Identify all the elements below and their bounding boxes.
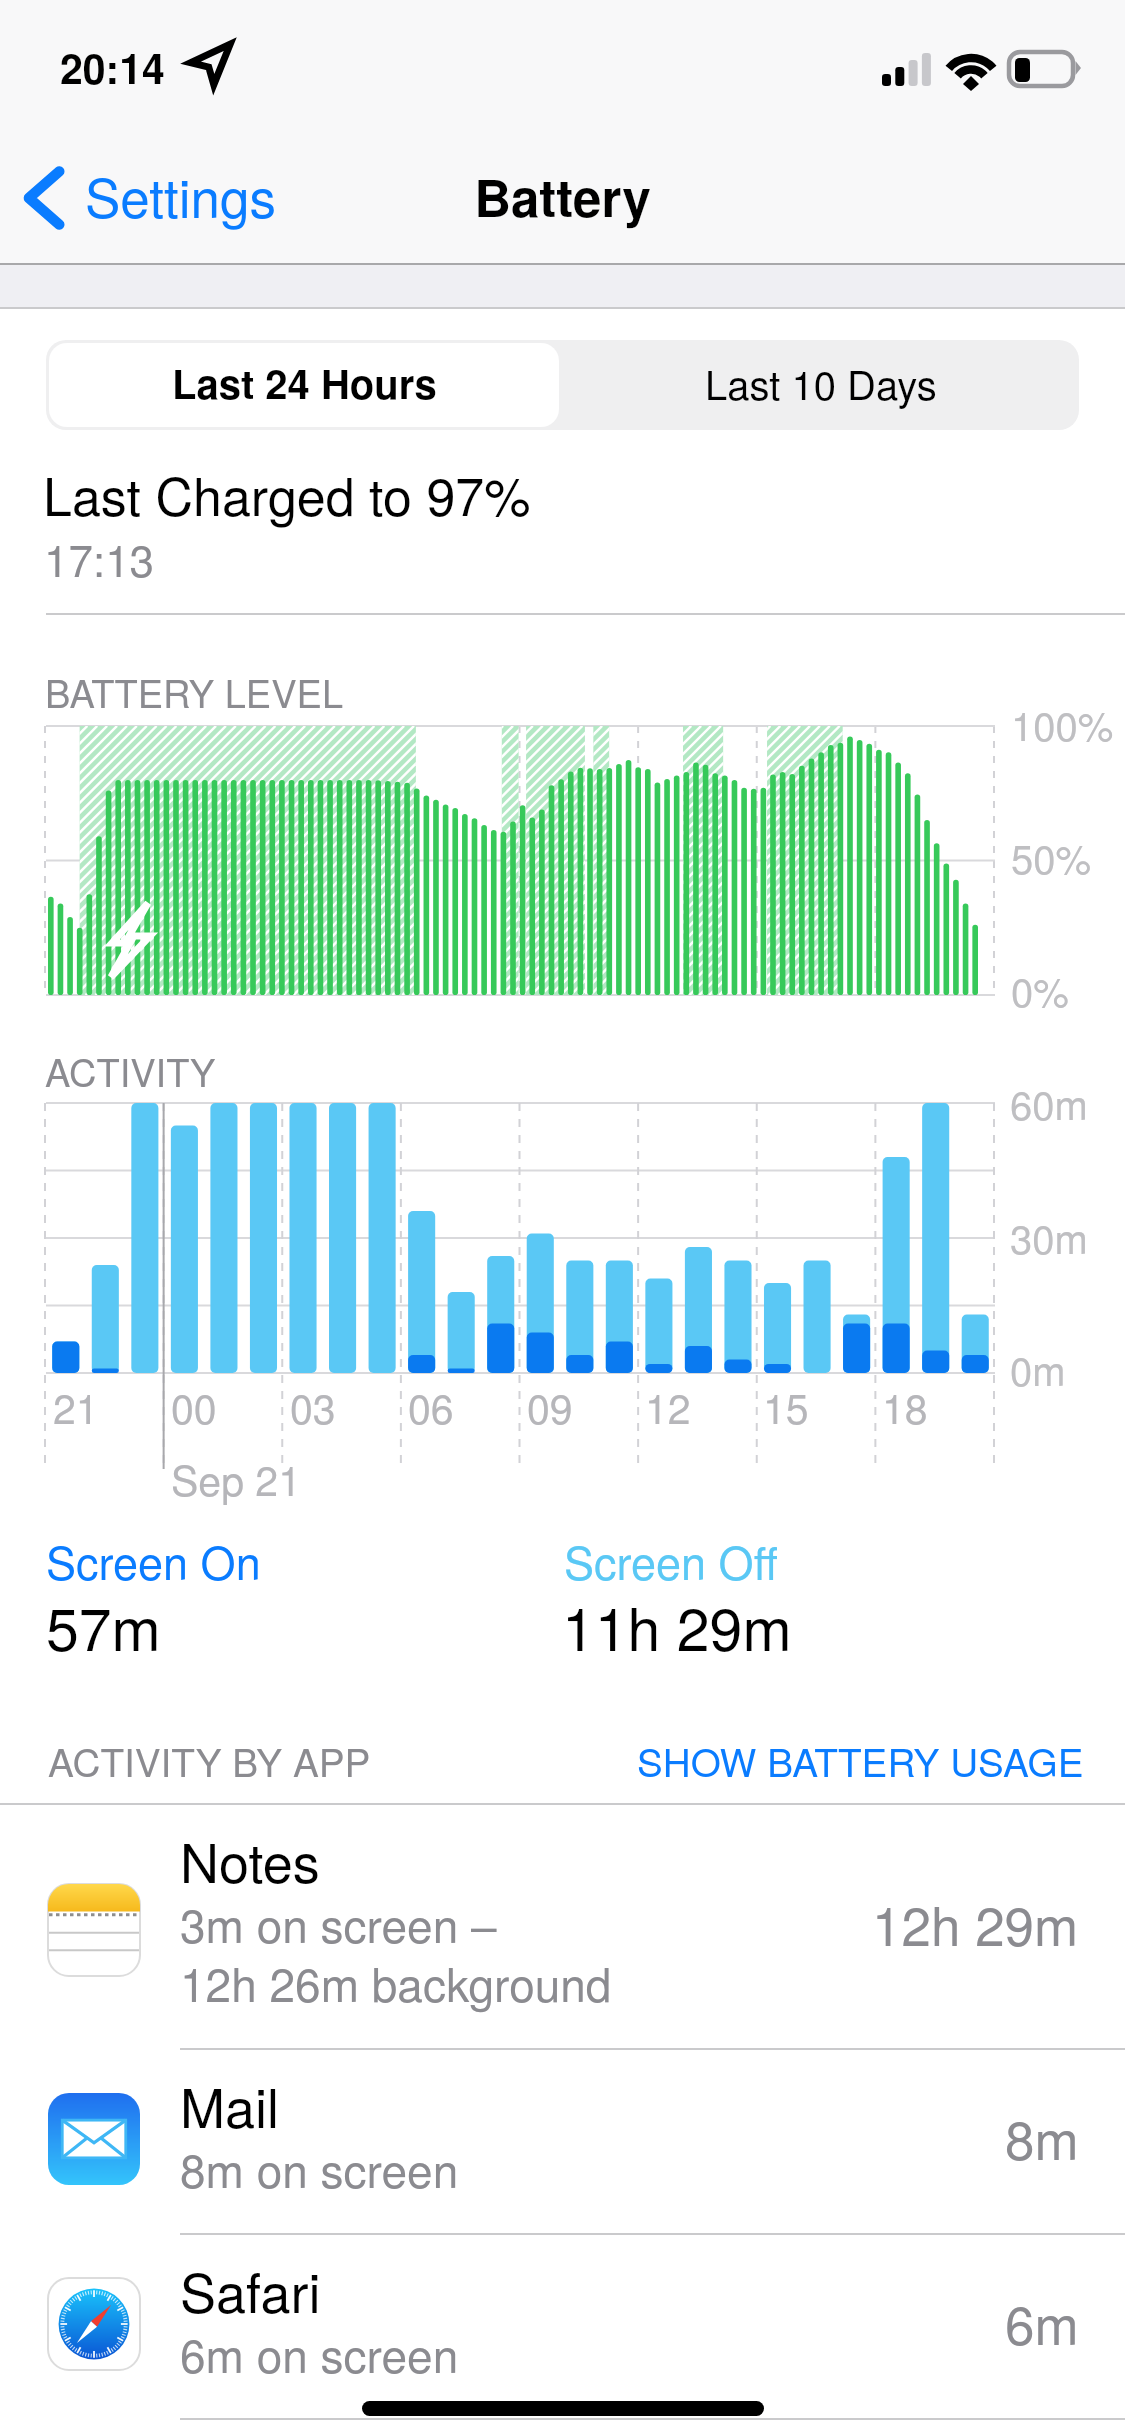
staticText: 0m (1010, 1340, 1066, 1397)
staticText: Safari (180, 2251, 321, 2328)
staticText: Sep 21 (171, 1449, 301, 1508)
staticText: 12h 29m (872, 1885, 1079, 1961)
staticText: 03 (290, 1377, 336, 1436)
button[interactable] (0, 2235, 1125, 2418)
staticText: Last Charged to 97% (43, 456, 531, 530)
staticText: 20:14 (60, 38, 165, 97)
staticText: Notes (180, 1821, 320, 1898)
staticText: Screen On (46, 1528, 261, 1592)
button[interactable]: SHOW BATTERY USAGE (637, 1733, 1084, 1788)
staticText: Last 10 Days (705, 354, 937, 411)
button[interactable]: Settings (0, 132, 300, 264)
staticText: 6m (1005, 2284, 1079, 2360)
staticText: 57m (46, 1583, 161, 1667)
staticText: 30m (1010, 1208, 1088, 1265)
staticText: 00 (171, 1377, 217, 1436)
staticText: ACTIVITY (45, 1043, 216, 1097)
staticText: 12 (645, 1377, 691, 1436)
staticText: 17:13 (44, 526, 155, 589)
button[interactable] (0, 1805, 1125, 2048)
staticText: ACTIVITY BY APP (48, 1733, 371, 1788)
staticText: SHOW BATTERY USAGE (637, 1733, 1084, 1788)
button[interactable]: Last 10 Days (562, 340, 1079, 430)
staticText: 09 (527, 1377, 573, 1436)
staticText: Last 24 Hours (172, 354, 437, 411)
staticText: 15 (763, 1377, 809, 1436)
staticText: Screen Off (564, 1528, 778, 1592)
staticText: 60m (1010, 1074, 1088, 1131)
staticText: 12h 26m background (180, 1949, 612, 2015)
staticText: 3m on screen – (180, 1890, 497, 1956)
staticText: Battery (0, 160, 1125, 233)
staticText: 06 (408, 1377, 454, 1436)
staticText: Settings (85, 157, 276, 233)
staticText: 18 (882, 1377, 928, 1436)
staticText: 0% (1011, 961, 1069, 1018)
staticText: 8m on screen (180, 2135, 459, 2201)
staticText: 11h 29m (562, 1583, 792, 1667)
staticText: 100% (1011, 695, 1114, 752)
staticText: 50% (1011, 828, 1092, 885)
staticText: BATTERY LEVEL (45, 664, 344, 718)
button[interactable]: Last 24 Hours (49, 343, 559, 427)
staticText: Mail (180, 2066, 279, 2143)
staticText: 21 (53, 1377, 99, 1436)
button[interactable] (0, 2050, 1125, 2233)
staticText: 6m on screen (180, 2320, 459, 2386)
staticText: 8m (1005, 2099, 1079, 2175)
